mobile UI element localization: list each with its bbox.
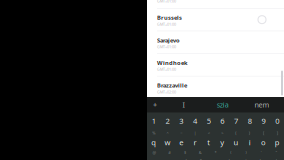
staticText: j bbox=[245, 156, 247, 160]
staticText: i bbox=[249, 137, 251, 147]
staticText: 3 bbox=[179, 116, 183, 126]
staticText: u bbox=[233, 137, 238, 147]
staticText: 6 bbox=[220, 116, 224, 126]
button[interactable]: szia bbox=[203, 97, 242, 112]
staticText: h bbox=[228, 156, 233, 160]
button[interactable]: 8 bbox=[243, 112, 257, 129]
staticText: t bbox=[207, 137, 210, 147]
staticText: [ bbox=[263, 130, 264, 135]
staticText: GMT+01:00 bbox=[157, 22, 176, 27]
staticText: Brussels bbox=[157, 14, 182, 21]
staticText: # bbox=[168, 150, 171, 155]
staticText: o bbox=[261, 137, 266, 147]
button[interactable]: 4 bbox=[188, 112, 202, 129]
button[interactable]: [ bbox=[257, 129, 270, 148]
button[interactable]: " bbox=[269, 148, 284, 160]
staticText: 8 bbox=[248, 116, 252, 126]
button[interactable]: | bbox=[188, 129, 202, 148]
button[interactable]: > bbox=[215, 129, 229, 148]
staticText: nem bbox=[254, 100, 269, 110]
button[interactable]: nem bbox=[242, 97, 282, 112]
staticText: k bbox=[259, 156, 263, 160]
staticText: & bbox=[199, 150, 202, 155]
staticText: $ bbox=[184, 150, 186, 155]
button[interactable]: Windhoek bbox=[147, 54, 284, 76]
staticText: } bbox=[249, 130, 251, 135]
staticText: { bbox=[235, 130, 237, 135]
staticText: ' bbox=[261, 150, 262, 155]
button[interactable]: @ bbox=[147, 148, 162, 160]
button[interactable]: 0 bbox=[270, 112, 284, 129]
staticText: ~ bbox=[180, 130, 182, 135]
staticText: r bbox=[193, 137, 196, 147]
button[interactable]: Brazzaville bbox=[147, 76, 284, 98]
staticText: q bbox=[151, 137, 156, 147]
staticText: Windhoek bbox=[157, 59, 188, 67]
staticText: | bbox=[194, 130, 196, 135]
staticText: 4 bbox=[193, 116, 197, 126]
button[interactable]: Add bbox=[147, 97, 163, 112]
staticText: ] bbox=[277, 130, 278, 135]
button[interactable]: Sarajevo bbox=[147, 31, 284, 53]
button[interactable]: 9 bbox=[257, 112, 270, 129]
button[interactable]: 5 bbox=[202, 112, 215, 129]
staticText: 0 bbox=[275, 116, 279, 126]
staticText: % bbox=[152, 130, 155, 135]
staticText: + bbox=[153, 100, 157, 110]
staticText: y bbox=[220, 137, 224, 147]
staticText: d bbox=[183, 156, 188, 160]
staticText: * bbox=[214, 150, 216, 155]
button[interactable]: ] bbox=[270, 129, 284, 148]
staticText: p bbox=[275, 137, 280, 147]
staticText: I bbox=[183, 100, 185, 110]
staticText: 2 bbox=[165, 116, 169, 126]
button[interactable]: & bbox=[193, 148, 208, 160]
button[interactable]: % bbox=[147, 129, 161, 148]
button[interactable]: ) bbox=[238, 148, 253, 160]
button[interactable]: ( bbox=[223, 148, 238, 160]
button[interactable]: { bbox=[229, 129, 243, 148]
staticText: Sarajevo bbox=[157, 36, 180, 44]
button[interactable]: ~ bbox=[174, 129, 188, 148]
button[interactable]: $ bbox=[177, 148, 193, 160]
button[interactable]: I bbox=[164, 97, 203, 112]
button[interactable]: # bbox=[162, 148, 177, 160]
staticText: l bbox=[275, 156, 277, 160]
staticText: ( bbox=[230, 150, 231, 155]
staticText: f bbox=[199, 156, 202, 160]
staticText: Brazzaville bbox=[157, 81, 187, 89]
button[interactable]: 7 bbox=[229, 112, 243, 129]
staticText: 9 bbox=[261, 116, 265, 126]
staticText: 5 bbox=[207, 116, 211, 126]
staticText: e bbox=[179, 137, 183, 147]
staticText: GMT+01:00 bbox=[157, 67, 176, 72]
staticText: szia bbox=[217, 100, 229, 110]
staticText: @ bbox=[153, 150, 157, 155]
button[interactable]: 3 bbox=[174, 112, 188, 129]
staticText: GMT+01:00 bbox=[157, 0, 176, 4]
button[interactable]: Brussels bbox=[147, 9, 284, 31]
staticText: > bbox=[221, 130, 223, 135]
staticText: 7 bbox=[234, 116, 238, 126]
button[interactable]: ^ bbox=[161, 129, 174, 148]
staticText: w bbox=[164, 137, 170, 147]
staticText: ^ bbox=[166, 130, 168, 135]
button[interactable]: 6 bbox=[215, 112, 229, 129]
button[interactable]: 1 bbox=[147, 112, 161, 129]
button[interactable]: < bbox=[202, 129, 215, 148]
staticText: < bbox=[208, 130, 210, 135]
button[interactable]: * bbox=[208, 148, 223, 160]
button[interactable]: } bbox=[243, 129, 257, 148]
staticText: GMT+01:00 bbox=[157, 44, 176, 49]
staticText: 1 bbox=[152, 116, 156, 126]
staticText: GMT+02:00 bbox=[157, 89, 176, 95]
button[interactable]: 2 bbox=[161, 112, 174, 129]
staticText: " bbox=[275, 150, 277, 155]
staticText: ) bbox=[245, 150, 246, 155]
